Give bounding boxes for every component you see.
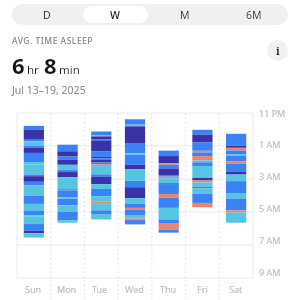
staticText: Sun: [25, 283, 42, 295]
button[interactable]: D: [14, 6, 79, 23]
staticText: 1 AM: [259, 138, 281, 150]
staticText: 3 AM: [259, 170, 281, 182]
staticText: AVG. TIME ASLEEP: [12, 35, 94, 47]
staticText: D: [43, 8, 51, 22]
staticText: Mon: [57, 283, 77, 295]
staticText: min: [59, 62, 80, 78]
button[interactable]: W: [83, 6, 148, 23]
staticText: i: [276, 43, 280, 58]
staticText: 8: [44, 50, 57, 80]
staticText: hr: [27, 62, 39, 78]
staticText: Jul 13–19, 2025: [12, 83, 86, 97]
staticText: W: [110, 8, 121, 22]
staticText: Fri: [197, 283, 208, 295]
button[interactable]: 6M: [221, 6, 286, 23]
staticText: Wed: [125, 283, 144, 295]
staticText: M: [180, 8, 190, 22]
staticText: 11 PM: [259, 107, 286, 119]
staticText: Tue: [92, 283, 108, 295]
staticText: 7 AM: [259, 234, 281, 246]
button[interactable]: M: [152, 6, 217, 23]
staticText: 6M: [246, 8, 262, 22]
staticText: Sat: [229, 283, 243, 295]
staticText: 6: [12, 50, 25, 80]
button[interactable]: About this data: [267, 40, 288, 61]
staticText: 9 AM: [259, 266, 281, 278]
staticText: Thu: [160, 283, 177, 295]
staticText: 5 AM: [259, 202, 281, 214]
